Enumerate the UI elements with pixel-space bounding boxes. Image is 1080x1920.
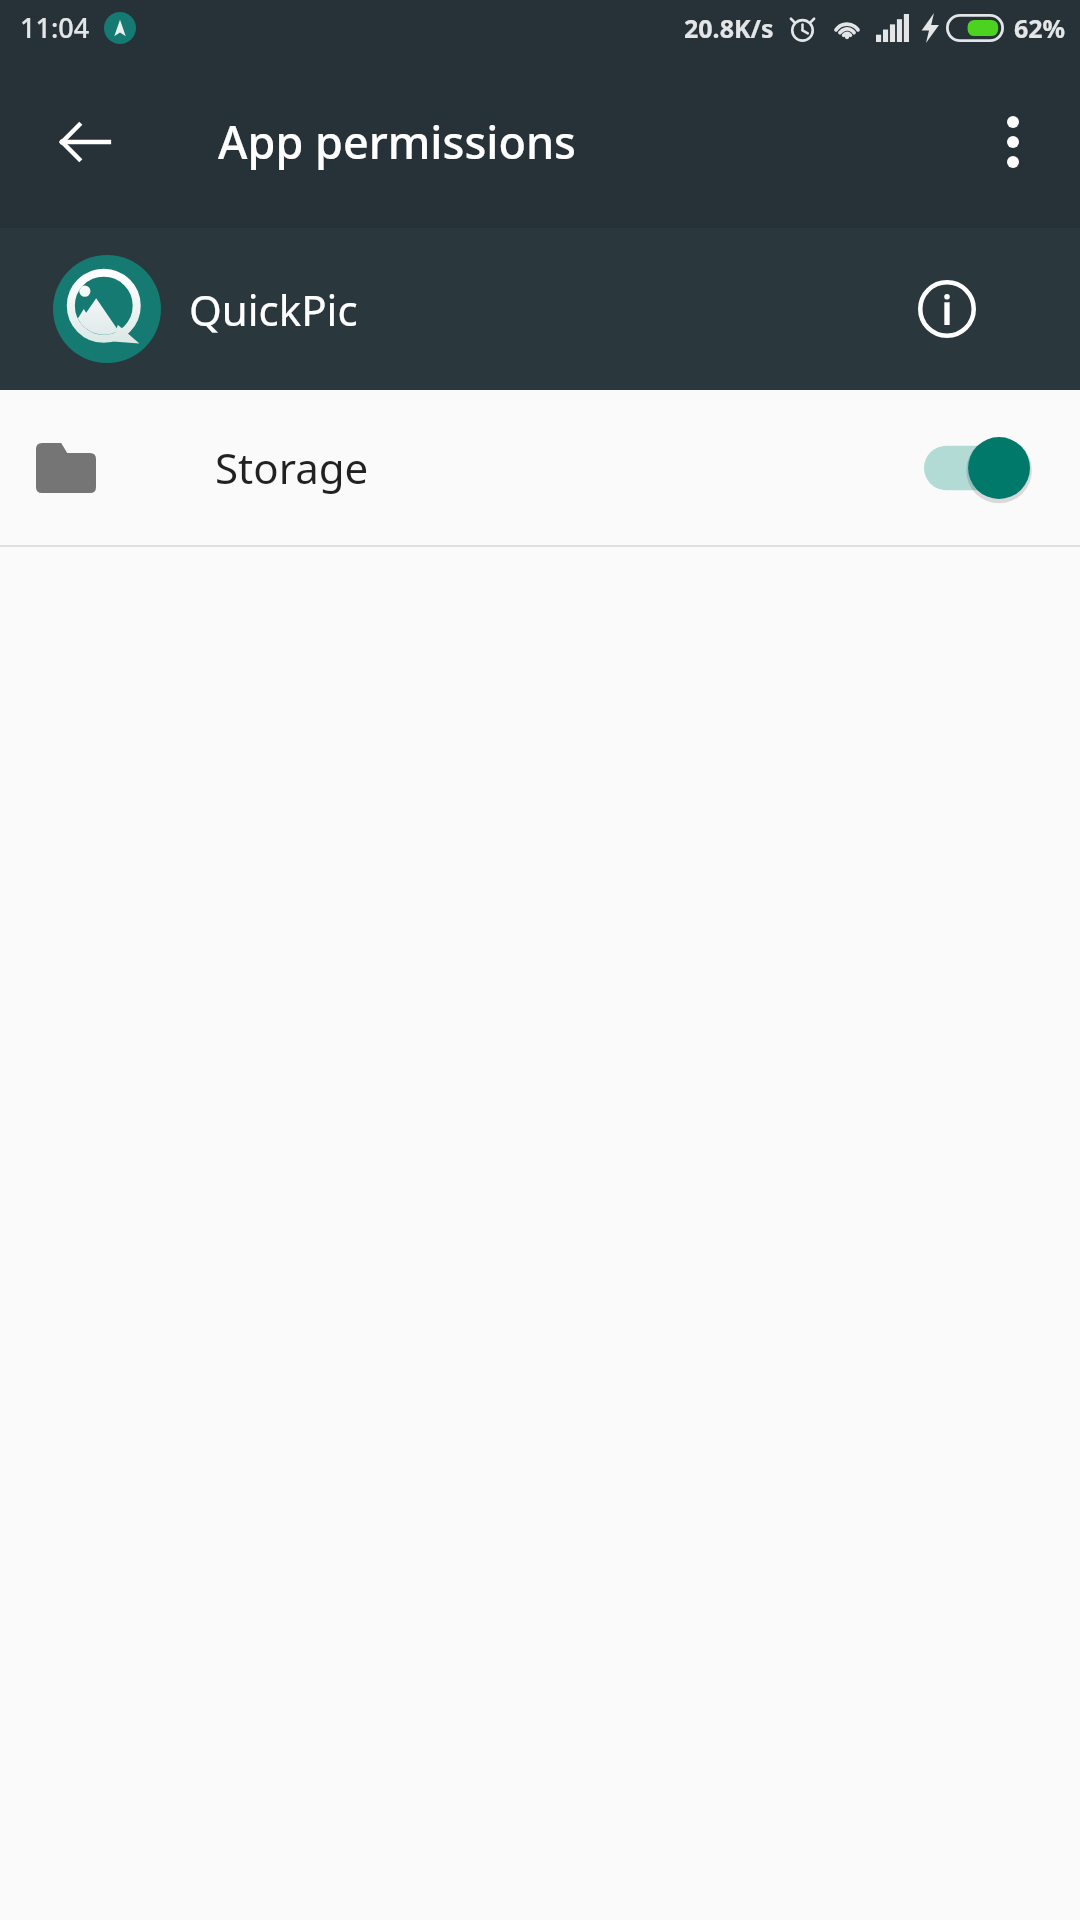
button[interactable]: Storage (0, 390, 1080, 545)
button[interactable]: App info (892, 254, 1002, 364)
staticText: 11:04 (20, 9, 90, 46)
button[interactable]: Storage permission toggle (924, 432, 1032, 504)
staticText: Storage (215, 439, 369, 496)
staticText: QuickPic (189, 281, 358, 338)
button[interactable]: Back (25, 82, 145, 202)
staticText: 62% (1014, 11, 1066, 45)
button[interactable]: More options (958, 87, 1068, 197)
staticText: App permissions (218, 111, 576, 172)
staticText: 20.8K/s (684, 11, 774, 45)
